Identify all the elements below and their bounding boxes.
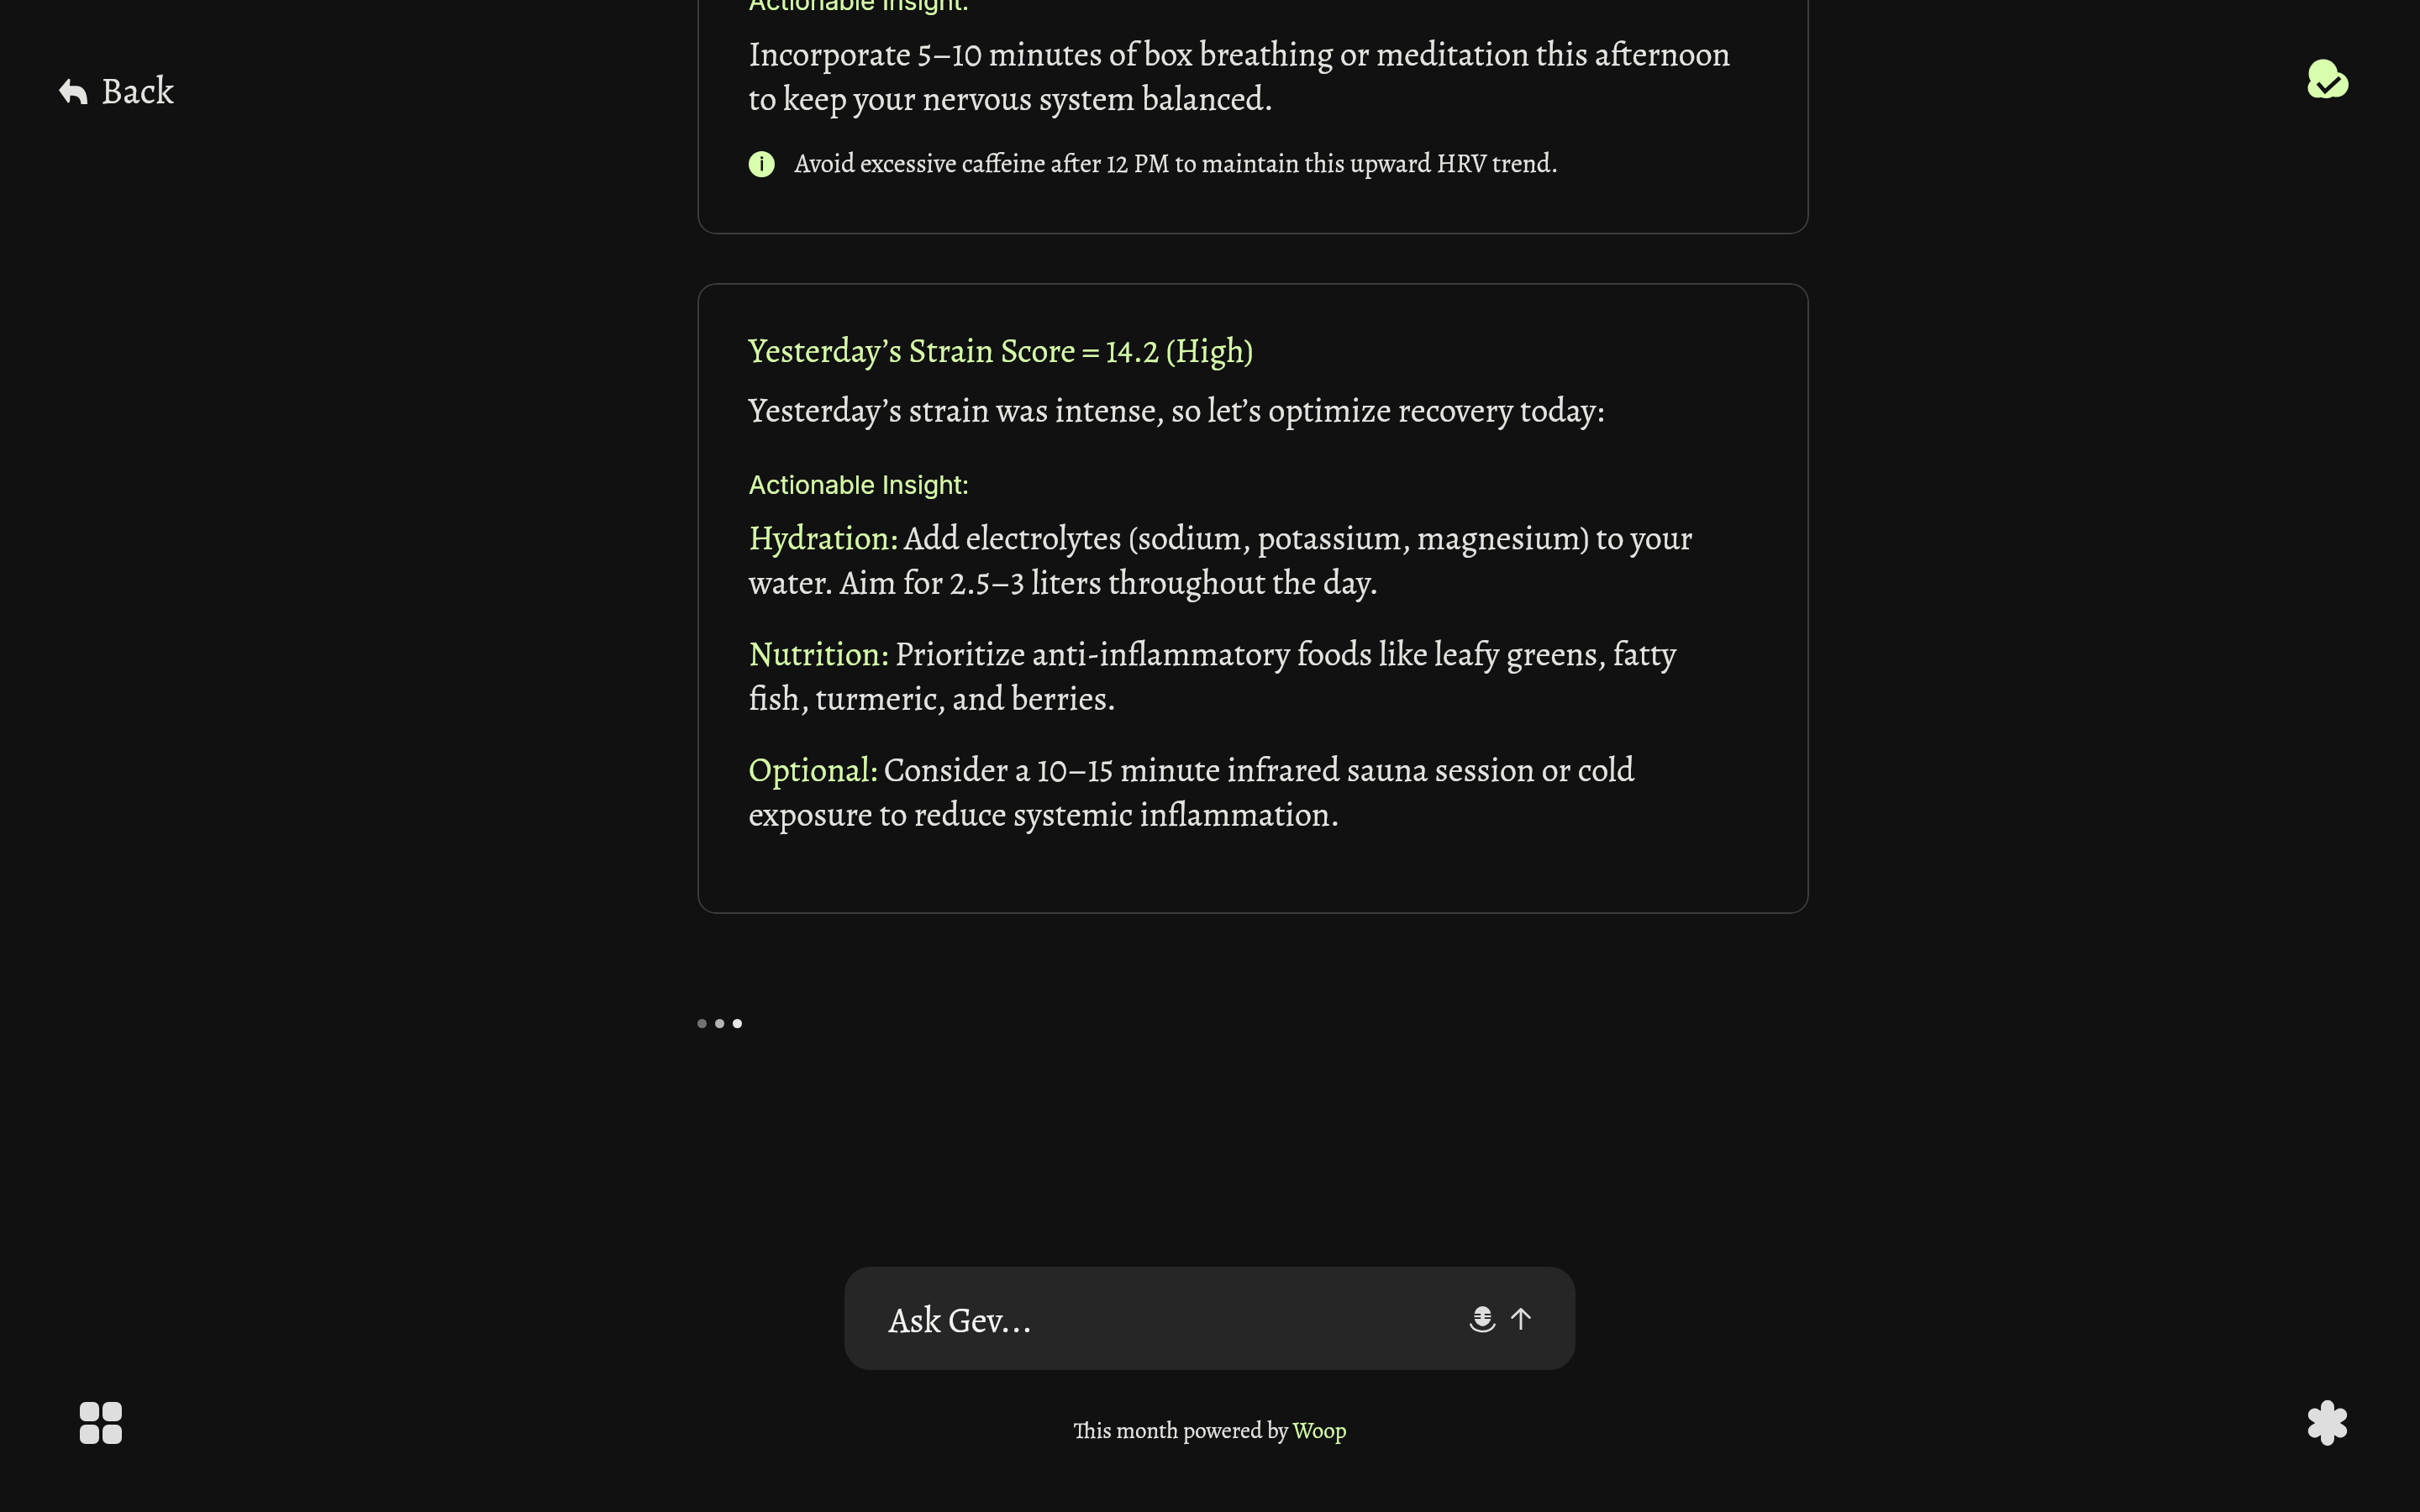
staticText: i bbox=[760, 153, 765, 176]
staticText: Nutrition: Prioritize anti-inflammatory … bbox=[749, 631, 1737, 721]
staticText: Actionable Insight: bbox=[749, 0, 970, 16]
staticText: This month powered by Woop bbox=[1074, 1415, 1347, 1446]
button[interactable]: Synced bbox=[2286, 37, 2369, 119]
button[interactable]: Voice input bbox=[1465, 1302, 1499, 1336]
staticText: Hydration: Add electrolytes (sodium, pot… bbox=[749, 515, 1737, 605]
staticText: Ask Gev... bbox=[889, 1296, 1033, 1344]
button[interactable]: Send bbox=[1506, 1304, 1536, 1334]
button[interactable]: Ask Gev... bbox=[844, 1267, 1576, 1370]
staticText: Yesterday’s Strain Score = 14.2 (High) bbox=[749, 328, 1254, 373]
staticText: Yesterday’s strain was intense, so let’s… bbox=[749, 387, 1737, 433]
staticText: Optional: Consider a 10–15 minute infrar… bbox=[749, 747, 1737, 837]
button[interactable]: Apps bbox=[59, 1381, 143, 1465]
button[interactable]: This month powered by Woop bbox=[1067, 1412, 1354, 1450]
staticText: Incorporate 5–10 minutes of box breathin… bbox=[749, 31, 1737, 121]
staticText: Avoid excessive caffeine after 12 PM to … bbox=[795, 146, 1559, 181]
button[interactable]: Effects bbox=[2286, 1381, 2370, 1465]
staticText: Back bbox=[101, 66, 175, 116]
button[interactable]: Back bbox=[50, 59, 183, 123]
staticText: Actionable Insight: bbox=[749, 470, 970, 500]
